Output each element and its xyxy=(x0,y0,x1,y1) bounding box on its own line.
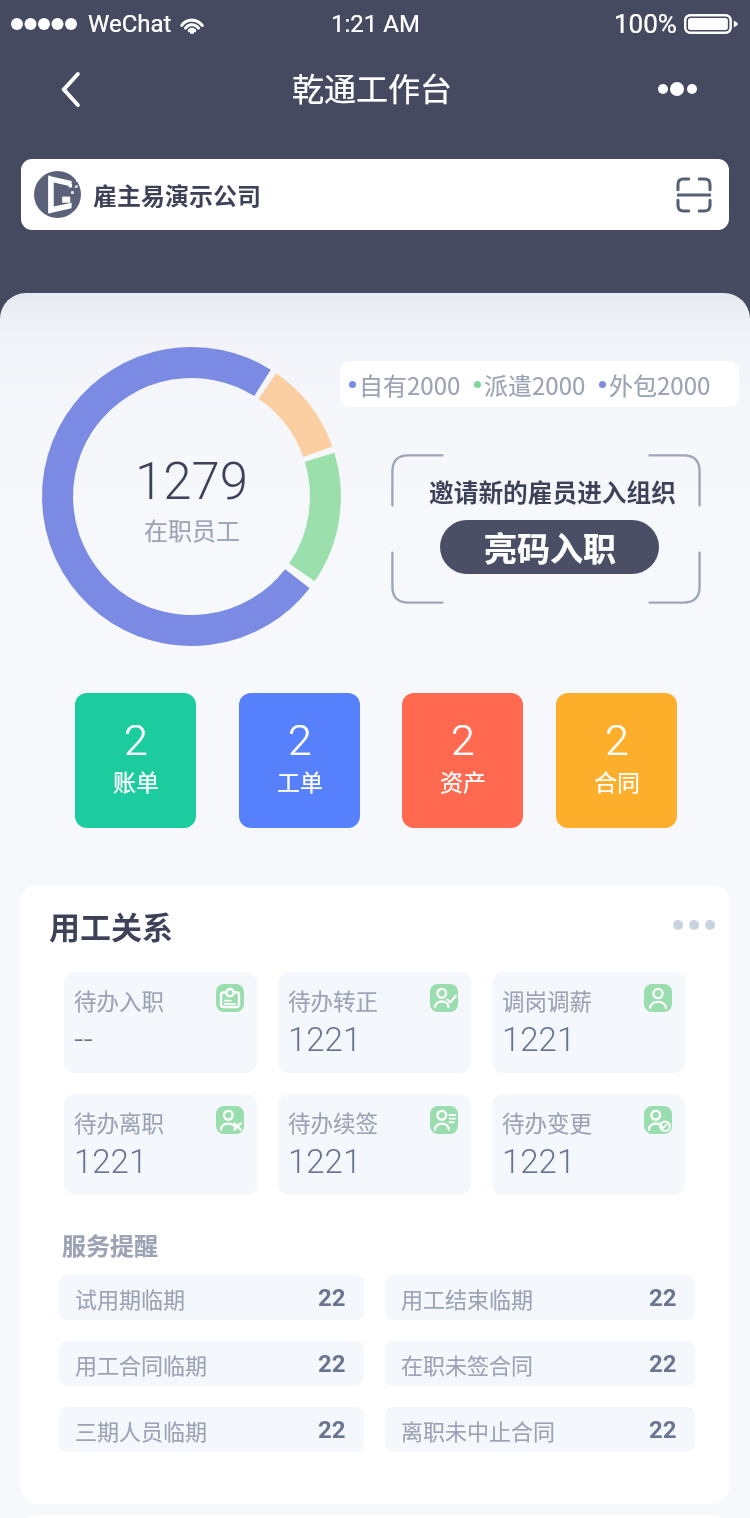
button[interactable]: More xyxy=(668,907,720,943)
staticText: 用工合同临期 xyxy=(75,1348,208,1380)
staticText: 服务提醒 xyxy=(62,1227,158,1262)
staticText: 待办转正 xyxy=(288,984,379,1017)
staticText: 待办入职 xyxy=(74,984,165,1017)
staticText: 离职未中止合同 xyxy=(401,1414,556,1446)
button[interactable]: 2 xyxy=(239,693,360,828)
staticText: 2 xyxy=(288,715,312,765)
staticText: 22 xyxy=(649,1350,677,1378)
staticText: 2 xyxy=(451,715,475,765)
staticText: 1221 xyxy=(288,1142,362,1181)
button[interactable]: 待办离职 xyxy=(64,1094,257,1195)
staticText: 试用期临期 xyxy=(75,1282,186,1314)
button[interactable]: 自有2000 xyxy=(340,361,739,407)
staticText: 1279 xyxy=(135,452,249,512)
staticText: 100% xyxy=(614,9,677,39)
staticText: 在职未签合同 xyxy=(401,1348,534,1380)
button[interactable]: 在职未签合同 xyxy=(385,1341,695,1386)
staticText: 调岗调薪 xyxy=(502,984,593,1017)
staticText: WeChat xyxy=(88,10,172,38)
button[interactable]: 2 xyxy=(402,693,523,828)
staticText: 22 xyxy=(318,1350,346,1378)
staticText: 外包2000 xyxy=(609,367,711,402)
button[interactable]: 雇主易演示公司 xyxy=(21,159,729,230)
button[interactable]: 待办转正 xyxy=(278,972,471,1073)
staticText: 待办离职 xyxy=(74,1106,165,1139)
staticText: 2 xyxy=(124,715,148,765)
staticText: 1221 xyxy=(74,1142,148,1181)
staticText: 雇主易演示公司 xyxy=(93,177,261,212)
staticText: 自有2000 xyxy=(359,367,461,402)
button[interactable]: 待办入职 xyxy=(64,972,257,1073)
staticText: 22 xyxy=(649,1284,677,1312)
button[interactable]: 用工合同临期 xyxy=(59,1341,364,1386)
button[interactable]: 试用期临期 xyxy=(59,1275,364,1320)
staticText: 三期人员临期 xyxy=(75,1414,208,1446)
staticText: 22 xyxy=(318,1284,346,1312)
staticText: 22 xyxy=(318,1416,346,1444)
staticText: 待办变更 xyxy=(502,1106,593,1139)
staticText: 用工关系 xyxy=(49,903,173,948)
button[interactable]: 用工结束临期 xyxy=(385,1275,695,1320)
button[interactable]: 待办续签 xyxy=(278,1094,471,1195)
staticText: 亮码入职 xyxy=(484,523,616,571)
staticText: 2 xyxy=(605,715,629,765)
staticText: 派遣2000 xyxy=(484,367,586,402)
button[interactable]: 三期人员临期 xyxy=(59,1407,364,1452)
button[interactable]: 2 xyxy=(556,693,677,828)
staticText: 账单 xyxy=(113,764,159,797)
staticText: -- xyxy=(74,1020,93,1059)
staticText: 资产 xyxy=(440,764,486,797)
staticText: 合同 xyxy=(594,764,640,797)
button[interactable]: 待办变更 xyxy=(492,1094,685,1195)
staticText: 待办续签 xyxy=(288,1106,379,1139)
button[interactable]: 调岗调薪 xyxy=(492,972,685,1073)
staticText: 1221 xyxy=(502,1020,576,1059)
button[interactable]: Back xyxy=(40,58,102,120)
staticText: 邀请新的雇员进入组织 xyxy=(429,473,676,509)
staticText: 1221 xyxy=(288,1020,362,1059)
button[interactable]: 离职未中止合同 xyxy=(385,1407,695,1452)
staticText: 1221 xyxy=(502,1142,576,1181)
staticText: 在职员工 xyxy=(144,512,240,547)
staticText: 1:21 AM xyxy=(331,10,420,38)
staticText: 22 xyxy=(649,1416,677,1444)
staticText: 乾通工作台 xyxy=(292,64,453,110)
button[interactable]: More options xyxy=(646,58,708,120)
button[interactable]: Scan QR code xyxy=(672,173,716,217)
staticText: 工单 xyxy=(277,764,323,797)
staticText: 用工结束临期 xyxy=(401,1282,534,1314)
button[interactable]: 亮码入职 xyxy=(440,520,659,574)
button[interactable]: 2 xyxy=(75,693,196,828)
